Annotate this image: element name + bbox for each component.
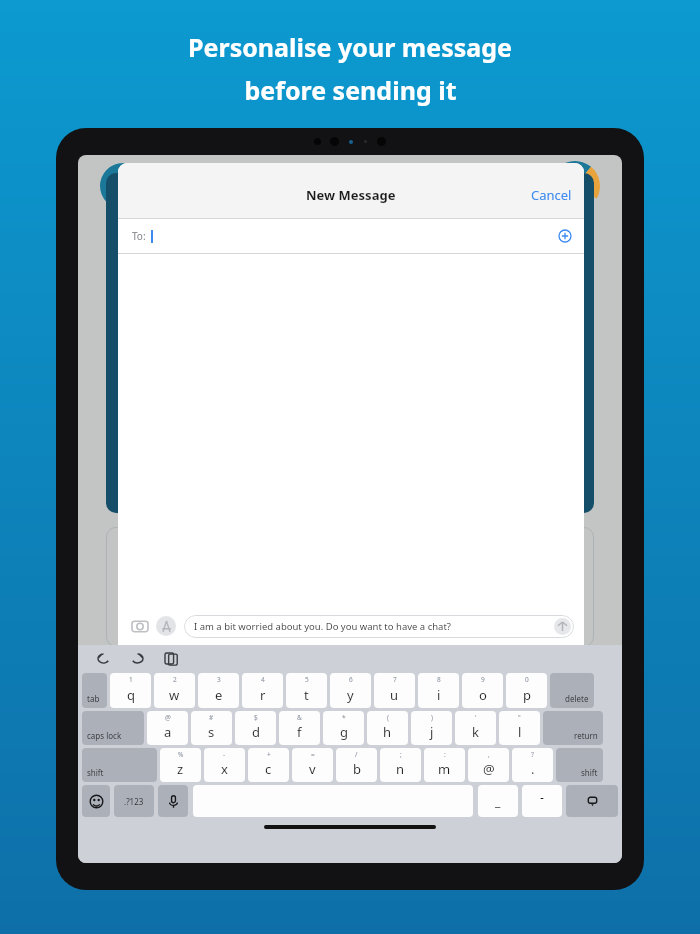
staticText: x: [221, 760, 228, 778]
staticText: @: [165, 713, 171, 722]
staticText: 6: [349, 675, 353, 684]
button[interactable]: ;: [380, 748, 421, 782]
button[interactable]: Camera: [128, 614, 152, 638]
button[interactable]: Dictate: [158, 785, 188, 817]
button[interactable]: .?123: [114, 785, 154, 817]
button[interactable]: Emoji: [82, 785, 110, 817]
staticText: h: [383, 723, 392, 741]
button[interactable]: _: [478, 785, 518, 817]
button[interactable]: 9: [462, 673, 503, 708]
staticText: p: [523, 686, 531, 704]
staticText: ,: [488, 750, 490, 759]
staticText: v: [309, 760, 316, 778]
button[interactable]: /: [336, 748, 377, 782]
button[interactable]: Hide keyboard: [566, 785, 618, 817]
button[interactable]: ,: [468, 748, 509, 782]
staticText: 1: [129, 675, 133, 684]
staticText: k: [472, 723, 479, 741]
staticText: _: [495, 793, 501, 809]
staticText: c: [265, 760, 272, 778]
staticText: 7: [393, 675, 397, 684]
staticText: delete: [565, 693, 589, 704]
button[interactable]: ?: [512, 748, 553, 782]
staticText: 2: [173, 675, 177, 684]
staticText: m: [438, 760, 451, 778]
button[interactable]: Redo: [126, 647, 148, 669]
button[interactable]: -: [204, 748, 245, 782]
staticText: b: [353, 760, 361, 778]
staticText: =: [311, 750, 315, 759]
button[interactable]: =: [292, 748, 333, 782]
button[interactable]: Send: [554, 618, 571, 635]
staticText: i: [437, 686, 441, 704]
staticText: &: [297, 713, 302, 722]
staticText: ): [431, 713, 433, 722]
staticText: shift: [581, 767, 598, 778]
button[interactable]: 1: [110, 673, 151, 708]
button[interactable]: shift: [556, 748, 603, 782]
staticText: 3: [217, 675, 221, 684]
button[interactable]: +: [248, 748, 289, 782]
button[interactable]: New Message: [118, 163, 584, 218]
staticText: d: [252, 723, 260, 741]
button[interactable]: ): [411, 711, 452, 745]
button[interactable]: shift: [82, 748, 157, 782]
button[interactable]: App Store: [156, 616, 176, 636]
staticText: ?: [531, 750, 534, 759]
button[interactable]: %: [160, 748, 201, 782]
button[interactable]: Add contact: [554, 225, 576, 247]
staticText: g: [340, 723, 348, 741]
staticText: To:: [132, 229, 146, 243]
staticText: before sending it: [244, 73, 457, 107]
staticText: t: [304, 686, 309, 704]
staticText: I am a bit worried about you. Do you wan…: [194, 620, 451, 633]
staticText: ;: [400, 750, 402, 759]
button[interactable]: (: [367, 711, 408, 745]
staticText: :: [444, 750, 446, 759]
staticText: -: [540, 789, 544, 805]
staticText: Personalise your message: [188, 30, 512, 64]
button[interactable]: I am a bit worried about you. Do you wan…: [184, 615, 574, 638]
button[interactable]: 5: [286, 673, 327, 708]
staticText: f: [297, 723, 302, 741]
staticText: $: [254, 713, 258, 722]
button[interactable]: *: [323, 711, 364, 745]
button[interactable]: :: [424, 748, 465, 782]
button[interactable]: 2: [154, 673, 195, 708]
staticText: e: [215, 686, 223, 704]
button[interactable]: return: [543, 711, 603, 745]
button[interactable]: caps lock: [82, 711, 144, 745]
button[interactable]: 0: [506, 673, 547, 708]
staticText: w: [169, 686, 180, 704]
button[interactable]: #: [191, 711, 232, 745]
staticText: l: [518, 723, 522, 741]
staticText: /: [355, 750, 358, 759]
staticText: s: [208, 723, 215, 741]
staticText: +: [267, 750, 271, 759]
button[interactable]: @: [147, 711, 188, 745]
staticText: y: [347, 686, 354, 704]
button[interactable]: 7: [374, 673, 415, 708]
staticText: tab: [87, 693, 100, 704]
staticText: j: [430, 723, 434, 741]
staticText: u: [390, 686, 399, 704]
button[interactable]: Cancel: [519, 180, 584, 210]
button[interactable]: &: [279, 711, 320, 745]
button[interactable]: 4: [242, 673, 283, 708]
button[interactable]: Undo: [92, 647, 114, 669]
button[interactable]: delete: [550, 673, 594, 708]
staticText: 0: [525, 675, 529, 684]
button[interactable]: Paste: [160, 647, 182, 669]
button[interactable]: ': [455, 711, 496, 745]
button[interactable]: 8: [418, 673, 459, 708]
button[interactable]: 6: [330, 673, 371, 708]
staticText: of: [581, 193, 594, 211]
button[interactable]: 3: [198, 673, 239, 708]
button[interactable]: -: [522, 785, 562, 817]
staticText: *: [342, 713, 346, 722]
button[interactable]: tab: [82, 673, 107, 708]
button[interactable]: ": [499, 711, 540, 745]
button[interactable]: $: [235, 711, 276, 745]
staticText: ': [475, 713, 477, 722]
